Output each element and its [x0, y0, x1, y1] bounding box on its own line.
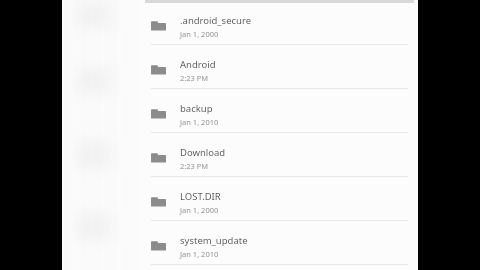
button[interactable]: Android [141, 52, 418, 88]
staticText: Jan 1, 2010 [180, 117, 219, 127]
staticText: 2:23 PM [180, 161, 209, 171]
staticText: Android [180, 58, 216, 71]
staticText: LOST.DIR [180, 190, 221, 203]
button[interactable]: LOST.DIR [141, 184, 418, 220]
staticText: Jan 1, 2010 [180, 249, 219, 259]
staticText: system_update [180, 234, 248, 247]
staticText: 2:23 PM [180, 73, 209, 83]
staticText: backup [180, 102, 213, 115]
staticText: Jan 1, 2000 [180, 205, 219, 215]
button[interactable]: .android_secure [141, 8, 418, 44]
button[interactable]: backup [141, 96, 418, 132]
staticText: .android_secure [180, 14, 252, 27]
staticText: Jan 1, 2000 [180, 29, 219, 39]
button[interactable]: Download [141, 140, 418, 176]
staticText: Download [180, 146, 226, 159]
button[interactable]: system_update [141, 228, 418, 264]
